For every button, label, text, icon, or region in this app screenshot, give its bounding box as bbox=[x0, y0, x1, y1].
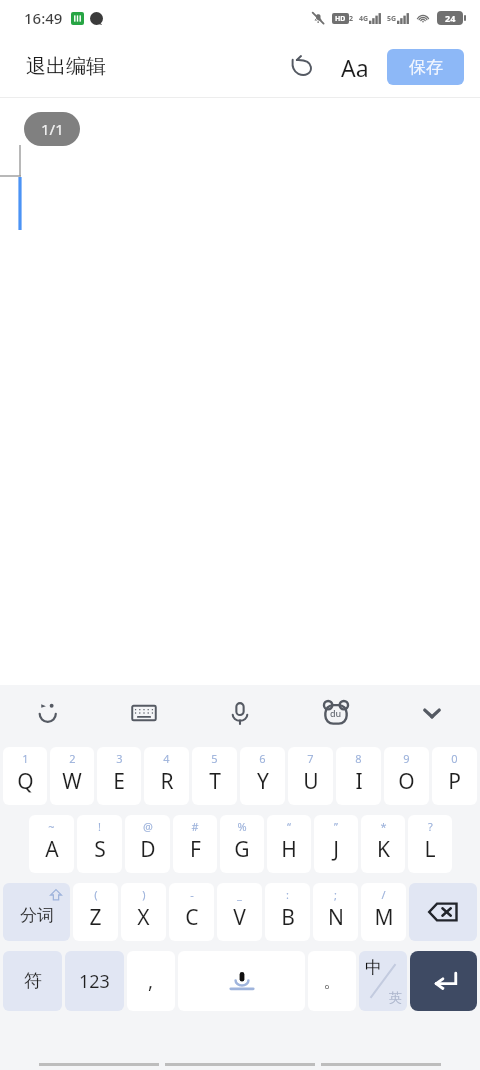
button[interactable]: Voice input bbox=[192, 685, 288, 741]
button[interactable]: 。 bbox=[308, 951, 356, 1011]
button[interactable]: ? bbox=[408, 815, 452, 873]
staticText: - bbox=[190, 887, 194, 902]
button[interactable]: Hide keyboard bbox=[384, 685, 480, 741]
button[interactable]: 5 bbox=[192, 747, 237, 805]
staticText: 5G bbox=[387, 14, 397, 24]
staticText: X bbox=[137, 903, 150, 932]
staticText: N bbox=[328, 903, 344, 932]
staticText: G bbox=[234, 835, 250, 864]
staticText: 2 bbox=[349, 14, 354, 24]
button[interactable]: Keyboard layout bbox=[96, 685, 192, 741]
button[interactable]: ” bbox=[314, 815, 358, 873]
button[interactable]: 符 bbox=[3, 951, 62, 1011]
staticText: 0 bbox=[451, 751, 458, 766]
staticText: 6 bbox=[259, 751, 266, 766]
staticText: : bbox=[286, 887, 289, 902]
staticText: du bbox=[330, 707, 342, 719]
staticText: 16:49 bbox=[24, 8, 63, 28]
staticText: 符 bbox=[24, 970, 42, 993]
button[interactable]: Font style bbox=[333, 45, 377, 89]
button[interactable]: ! bbox=[77, 815, 122, 873]
button[interactable]: @ bbox=[125, 815, 170, 873]
button[interactable]: 0 bbox=[432, 747, 477, 805]
button[interactable]: Backspace bbox=[409, 883, 477, 941]
button[interactable]: * bbox=[361, 815, 405, 873]
staticText: W bbox=[62, 767, 82, 796]
staticText: 中 bbox=[365, 957, 382, 978]
staticText: J bbox=[333, 835, 339, 864]
staticText: 7 bbox=[307, 751, 314, 766]
staticText: I bbox=[355, 767, 363, 796]
staticText: S bbox=[94, 835, 106, 864]
staticText: U bbox=[303, 767, 319, 796]
button[interactable]: 中 bbox=[359, 951, 407, 1011]
staticText: 1/1 bbox=[41, 119, 64, 139]
staticText: V bbox=[233, 903, 246, 932]
staticText: ” bbox=[334, 819, 338, 834]
button[interactable]: 分词 bbox=[3, 883, 70, 941]
staticText: 3 bbox=[116, 751, 123, 766]
button[interactable]: 1/1 bbox=[24, 112, 80, 146]
staticText: 。 bbox=[323, 970, 341, 993]
button[interactable]: # bbox=[173, 815, 217, 873]
button[interactable]: 2 bbox=[50, 747, 94, 805]
staticText: HD bbox=[335, 14, 346, 24]
staticText: 4G bbox=[359, 14, 369, 24]
staticText: T bbox=[209, 767, 221, 796]
staticText: 2 bbox=[69, 751, 76, 766]
button[interactable]: Space bbox=[178, 951, 305, 1011]
button[interactable]: 保存 bbox=[387, 49, 464, 85]
staticText: % bbox=[237, 819, 247, 834]
button[interactable]: Undo bbox=[279, 45, 323, 89]
button[interactable]: ( bbox=[73, 883, 118, 941]
staticText: Q bbox=[17, 767, 34, 796]
button[interactable]: 4 bbox=[144, 747, 189, 805]
button[interactable]: : bbox=[265, 883, 310, 941]
button[interactable]: ) bbox=[121, 883, 166, 941]
staticText: Aa bbox=[341, 52, 369, 83]
staticText: 5 bbox=[211, 751, 218, 766]
staticText: Y bbox=[257, 767, 269, 796]
button[interactable]: Enter bbox=[410, 951, 477, 1011]
staticText: 4 bbox=[163, 751, 170, 766]
button[interactable]: Baidu input bbox=[288, 685, 384, 741]
staticText: ~ bbox=[48, 819, 55, 834]
staticText: ( bbox=[94, 887, 98, 902]
button[interactable]: - bbox=[169, 883, 214, 941]
button[interactable]: “ bbox=[267, 815, 311, 873]
staticText: H bbox=[281, 835, 297, 864]
staticText: K bbox=[377, 835, 390, 864]
staticText: _ bbox=[237, 887, 242, 902]
button[interactable]: 退出编辑 bbox=[22, 50, 110, 83]
staticText: A bbox=[45, 835, 59, 864]
staticText: 9 bbox=[403, 751, 410, 766]
button[interactable]: , bbox=[127, 951, 175, 1011]
button[interactable]: Emoji bbox=[0, 685, 96, 741]
button[interactable]: 1 bbox=[3, 747, 47, 805]
button[interactable]: 123 bbox=[65, 951, 124, 1011]
staticText: ! bbox=[98, 819, 101, 834]
staticText: ) bbox=[142, 887, 146, 902]
staticText: B bbox=[281, 903, 295, 932]
button[interactable]: 3 bbox=[97, 747, 141, 805]
button[interactable]: 7 bbox=[288, 747, 333, 805]
button[interactable]: _ bbox=[217, 883, 262, 941]
button[interactable]: 8 bbox=[336, 747, 381, 805]
button[interactable]: 9 bbox=[384, 747, 429, 805]
staticText: M bbox=[374, 903, 394, 932]
staticText: / bbox=[381, 887, 386, 902]
staticText: O bbox=[398, 767, 415, 796]
staticText: ; bbox=[334, 887, 337, 902]
staticText: “ bbox=[287, 819, 291, 834]
button[interactable]: ~ bbox=[29, 815, 74, 873]
staticText: ? bbox=[428, 819, 433, 834]
button[interactable]: 6 bbox=[240, 747, 285, 805]
staticText: 分词 bbox=[20, 905, 54, 926]
button[interactable]: / bbox=[361, 883, 406, 941]
staticText: Z bbox=[89, 903, 102, 932]
button[interactable]: % bbox=[220, 815, 264, 873]
button[interactable]: ; bbox=[313, 883, 358, 941]
staticText: * bbox=[380, 819, 387, 834]
staticText: 8 bbox=[355, 751, 362, 766]
staticText: # bbox=[191, 819, 199, 834]
